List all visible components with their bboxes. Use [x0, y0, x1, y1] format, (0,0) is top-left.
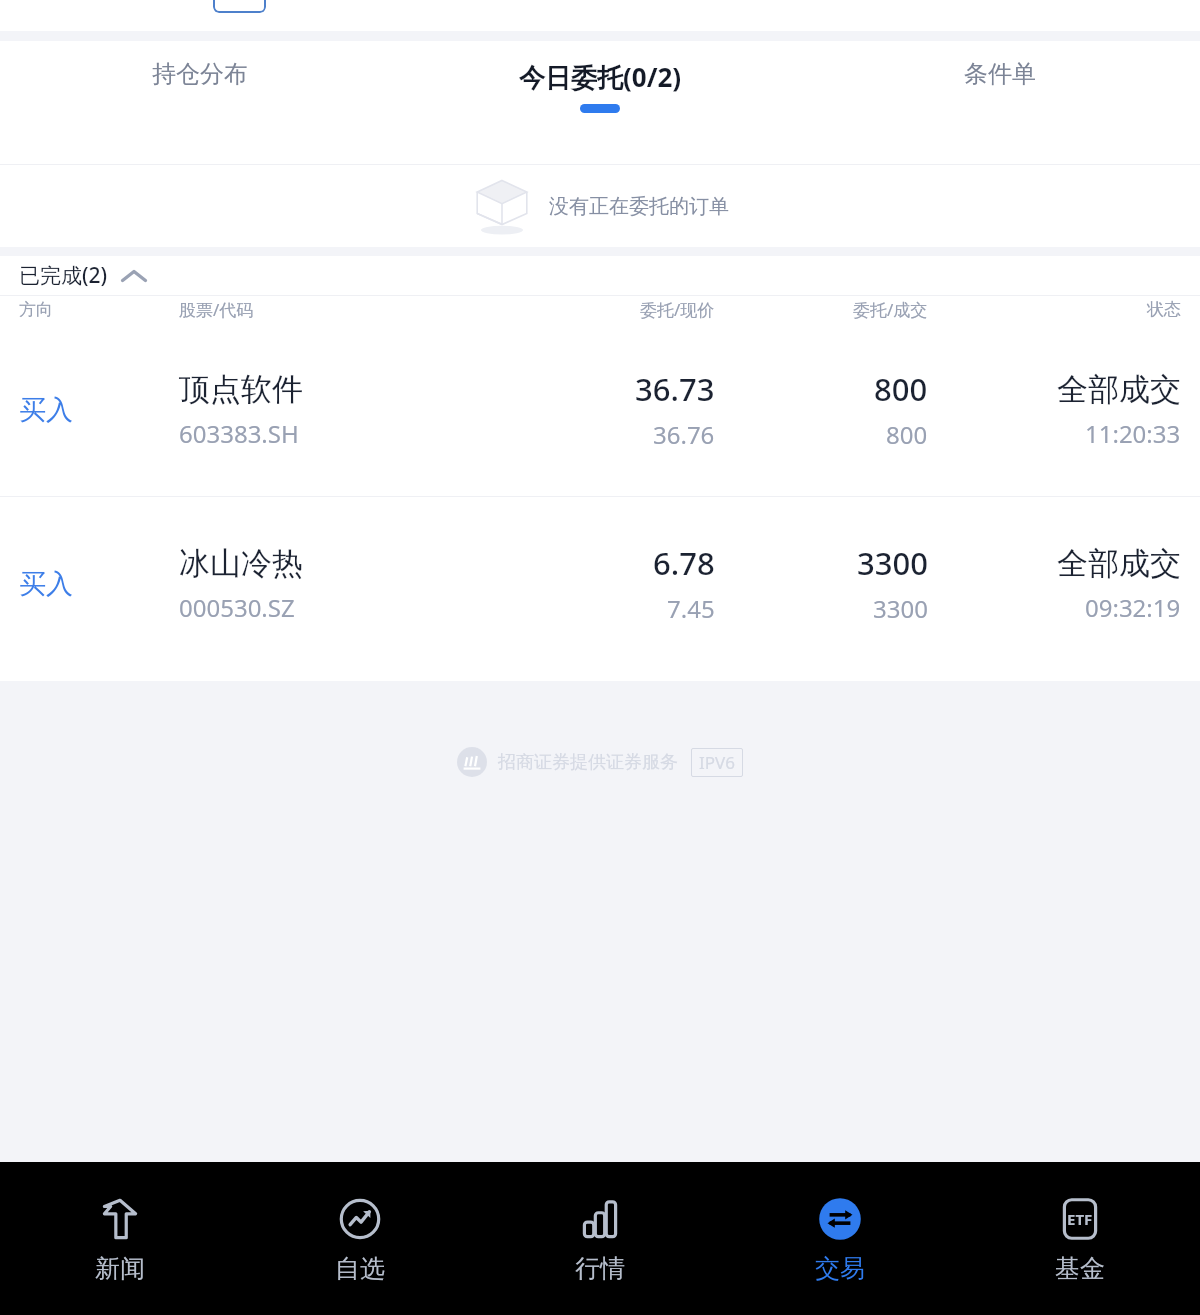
- staticText: 买入: [19, 567, 73, 601]
- staticText: 已完成(2): [19, 261, 108, 290]
- staticText: 交易: [815, 1253, 865, 1284]
- staticText: 冰山冷热: [179, 544, 303, 583]
- button[interactable]: 自选: [240, 1193, 480, 1284]
- staticText: 委托/成交: [853, 298, 928, 321]
- staticText: 7.45: [667, 592, 715, 625]
- staticText: 全部成交: [1057, 544, 1181, 583]
- staticText: 买入: [19, 393, 73, 427]
- button[interactable]: 持仓分布: [0, 59, 400, 98]
- staticText: 全部成交: [1057, 370, 1181, 409]
- staticText: 委托/现价: [640, 298, 715, 321]
- staticText: 持仓分布: [152, 59, 248, 89]
- staticText: IPV6: [699, 751, 735, 774]
- staticText: 6.78: [653, 542, 715, 584]
- staticText: 招商证券提供证券服务: [498, 751, 678, 774]
- staticText: 今日委托(0/2): [519, 59, 682, 95]
- button[interactable]: 已完成(2): [0, 256, 1200, 295]
- staticText: 3300: [857, 542, 928, 584]
- button[interactable]: [213, 0, 266, 13]
- button[interactable]: 今日委托(0/2): [400, 59, 800, 113]
- staticText: 36.76: [653, 418, 715, 451]
- staticText: 800: [886, 418, 928, 451]
- staticText: 000530.SZ: [179, 591, 295, 624]
- staticText: 股票/代码: [179, 298, 254, 321]
- button[interactable]: 条件单: [800, 59, 1200, 98]
- staticText: 自选: [335, 1253, 385, 1284]
- staticText: 状态: [1147, 299, 1181, 320]
- staticText: 36.73: [635, 368, 715, 410]
- button[interactable]: 行情: [480, 1193, 720, 1284]
- staticText: 行情: [575, 1253, 625, 1284]
- staticText: 800: [874, 368, 928, 410]
- staticText: 基金: [1055, 1253, 1105, 1284]
- button[interactable]: 交易: [720, 1193, 960, 1284]
- staticText: 新闻: [95, 1253, 145, 1284]
- staticText: 顶点软件: [179, 370, 303, 409]
- staticText: 3300: [873, 592, 928, 625]
- staticText: 09:32:19: [1085, 591, 1181, 624]
- button[interactable]: 买入: [0, 323, 1200, 496]
- button[interactable]: 买入: [0, 497, 1200, 670]
- staticText: 条件单: [964, 59, 1036, 89]
- staticText: 没有正在委托的订单: [549, 194, 729, 219]
- staticText: 方向: [19, 299, 53, 320]
- button[interactable]: 新闻: [0, 1193, 240, 1284]
- button[interactable]: 基金: [960, 1193, 1200, 1284]
- staticText: 603383.SH: [179, 417, 299, 450]
- staticText: ETF: [1067, 1209, 1093, 1229]
- staticText: 11:20:33: [1085, 417, 1181, 450]
